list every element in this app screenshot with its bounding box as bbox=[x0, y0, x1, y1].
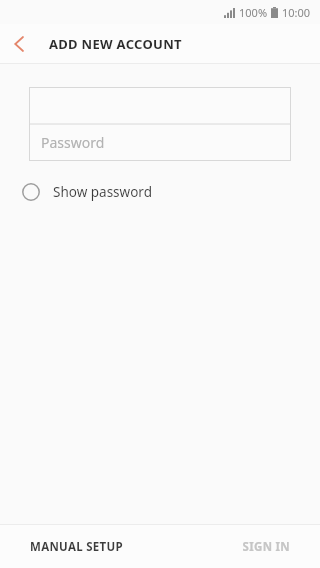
staticText: MANUAL SETUP bbox=[30, 539, 123, 555]
staticText: Show password bbox=[53, 183, 152, 201]
button[interactable]: Show password bbox=[22, 176, 152, 208]
button[interactable]: Back bbox=[0, 24, 38, 63]
button[interactable]: MANUAL SETUP bbox=[16, 529, 137, 565]
staticText: SIGN IN bbox=[242, 539, 290, 555]
staticText: ADD NEW ACCOUNT bbox=[49, 35, 182, 53]
button[interactable]: Password bbox=[29, 124, 291, 161]
button[interactable]: SIGN IN bbox=[228, 529, 304, 565]
button[interactable] bbox=[29, 87, 291, 124]
staticText: 10:00 bbox=[282, 5, 311, 20]
staticText: 100% bbox=[239, 5, 268, 20]
staticText: Password bbox=[41, 133, 105, 152]
